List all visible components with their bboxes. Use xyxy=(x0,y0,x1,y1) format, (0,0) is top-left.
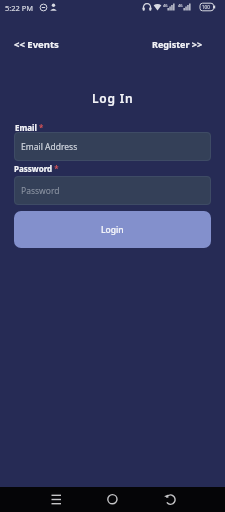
staticText: Password * xyxy=(14,163,59,173)
button[interactable]: Login xyxy=(14,211,211,248)
button[interactable] xyxy=(0,487,75,512)
button[interactable] xyxy=(150,487,225,512)
staticText: Password xyxy=(21,185,60,197)
staticText: 46 xyxy=(163,3,168,8)
staticText: Email Address xyxy=(21,141,78,153)
staticText: 46 xyxy=(178,3,183,8)
staticText: 5:22 PM xyxy=(5,3,34,13)
button[interactable]: Password xyxy=(14,176,211,205)
button[interactable]: << Events xyxy=(14,38,59,50)
button[interactable] xyxy=(75,487,150,512)
button[interactable]: Register >> xyxy=(152,38,203,50)
staticText: Login xyxy=(101,224,124,236)
button[interactable]: Email Address xyxy=(14,132,211,161)
staticText: 100 xyxy=(202,4,210,10)
staticText: Log In xyxy=(92,90,134,106)
staticText: Email * xyxy=(15,122,44,132)
